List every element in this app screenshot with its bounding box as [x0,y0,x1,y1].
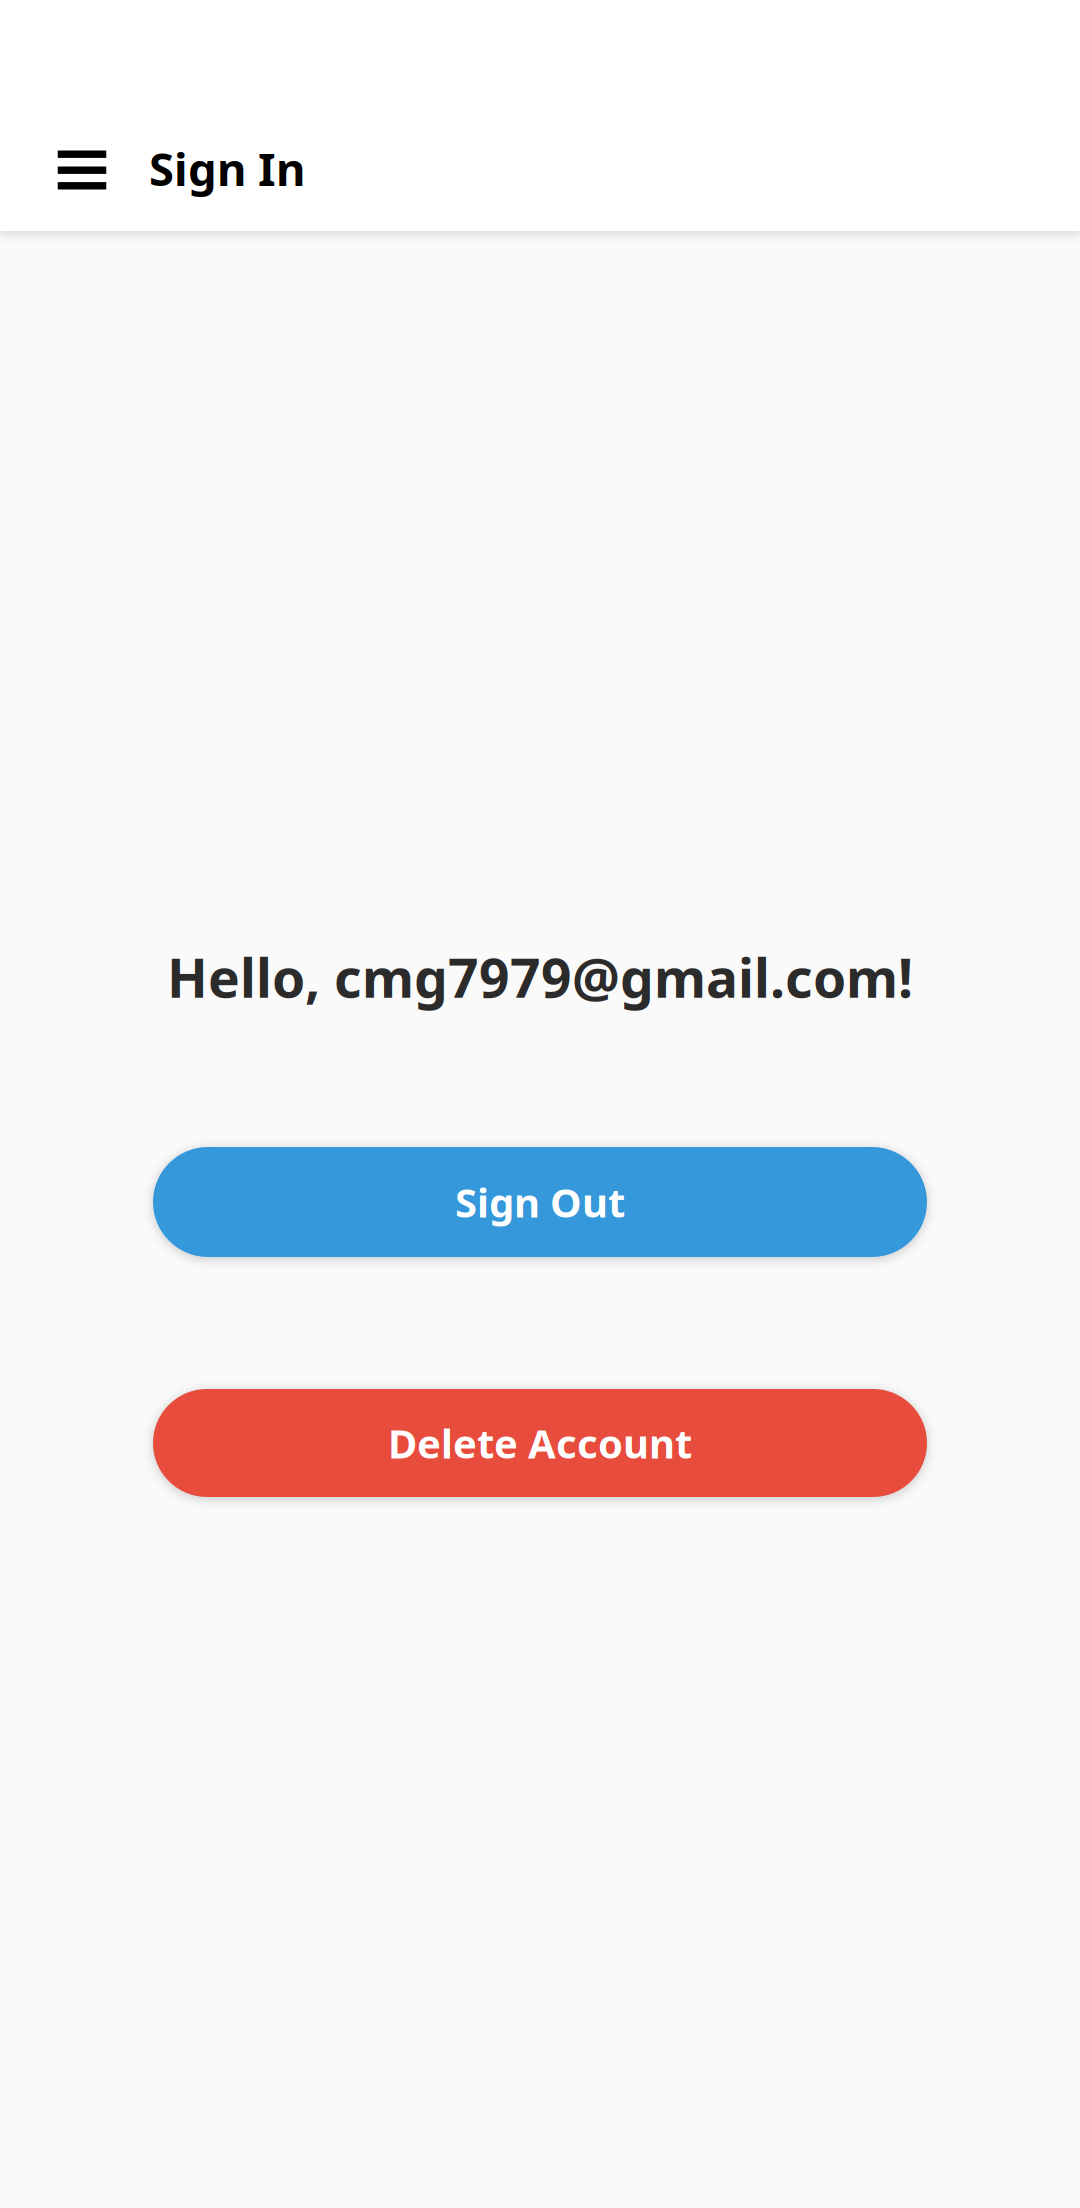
button[interactable]: Menu [58,123,105,216]
button[interactable]: Delete Account [153,1389,927,1497]
staticText: Delete Account [388,1416,692,1469]
staticText: Sign In [149,138,305,199]
staticText: Sign Out [455,1175,625,1228]
staticText: Hello, cmg7979@gmail.com! [167,942,913,1012]
button[interactable]: Sign Out [153,1147,927,1257]
